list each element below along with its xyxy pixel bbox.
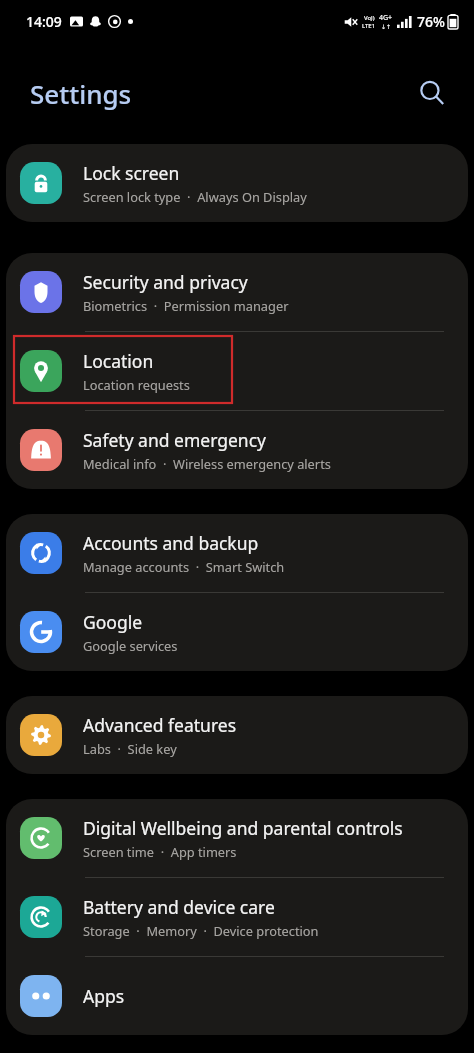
- button[interactable]: Digital Wellbeing and parental controls: [6, 799, 468, 877]
- staticText: LTE1: [362, 22, 376, 30]
- staticText: Safety and emergency: [83, 428, 266, 452]
- staticText: Security and privacy: [83, 270, 248, 294]
- button[interactable]: Search: [410, 71, 454, 115]
- staticText: Google services: [83, 637, 178, 654]
- staticText: Location: [83, 349, 154, 373]
- staticText: 76%: [417, 12, 445, 31]
- staticText: Google: [83, 610, 143, 634]
- button[interactable]: Accounts and backup: [6, 514, 468, 592]
- staticText: Location requests: [83, 376, 190, 393]
- button[interactable]: Lock screen: [6, 144, 468, 222]
- button[interactable]: Apps: [6, 957, 468, 1035]
- staticText: VoJ): [364, 14, 375, 22]
- staticText: Labs · Side key: [83, 740, 177, 757]
- staticText: Apps: [83, 984, 125, 1008]
- staticText: Biometrics · Permission manager: [83, 297, 289, 314]
- staticText: Screen lock type · Always On Display: [83, 188, 307, 205]
- button[interactable]: Safety and emergency: [6, 411, 468, 489]
- button[interactable]: Advanced features: [6, 696, 468, 774]
- staticText: ↓↑: [381, 23, 392, 30]
- staticText: Settings: [30, 76, 132, 111]
- staticText: Storage · Memory · Device protection: [83, 922, 319, 939]
- staticText: Battery and device care: [83, 895, 275, 919]
- staticText: Screen time · App timers: [83, 843, 237, 860]
- button[interactable]: Battery and device care: [6, 878, 468, 956]
- staticText: Digital Wellbeing and parental controls: [83, 816, 403, 840]
- staticText: Manage accounts · Smart Switch: [83, 558, 285, 575]
- staticText: Medical info · Wireless emergency alerts: [83, 455, 331, 472]
- staticText: Advanced features: [83, 713, 237, 737]
- staticText: Accounts and backup: [83, 531, 259, 555]
- staticText: Lock screen: [83, 161, 180, 185]
- button[interactable]: Location: [6, 332, 468, 410]
- button[interactable]: Google: [6, 593, 468, 671]
- staticText: 14:09: [26, 12, 62, 31]
- button[interactable]: Security and privacy: [6, 253, 468, 331]
- staticText: 4G+: [379, 13, 393, 23]
